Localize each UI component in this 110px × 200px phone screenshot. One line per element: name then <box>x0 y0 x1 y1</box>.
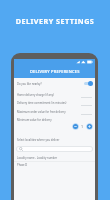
staticText: Home delivery charge (if any) <box>17 93 54 97</box>
staticText: Phase II <box>17 163 28 167</box>
button[interactable]: Maximum order value for free delivery <box>14 109 95 116</box>
staticText: Maximum order value for free delivery <box>17 110 66 114</box>
button[interactable]: Home delivery charge (if any) <box>14 92 95 99</box>
staticText: DELIVERY PREFERENCES <box>30 69 80 74</box>
staticText: Locality name - Locality number <box>17 156 58 160</box>
button[interactable] <box>17 147 92 151</box>
staticText: Select localities where you deliver <box>17 138 60 142</box>
staticText: Delivery time commitment (in minutes) <box>17 101 67 105</box>
button[interactable]: Do you like nearby? <box>14 79 95 88</box>
button[interactable]: Delivery time commitment (in minutes) <box>14 100 95 107</box>
staticText: Do you like nearby? <box>17 82 42 86</box>
staticText: DELIVERY SETTINGS <box>0 16 110 26</box>
staticText: Minimum value for delivery <box>17 118 52 122</box>
staticText: 1 <box>81 124 84 129</box>
button[interactable]: Decrease <box>72 123 79 130</box>
button[interactable]: Increase <box>86 123 93 130</box>
